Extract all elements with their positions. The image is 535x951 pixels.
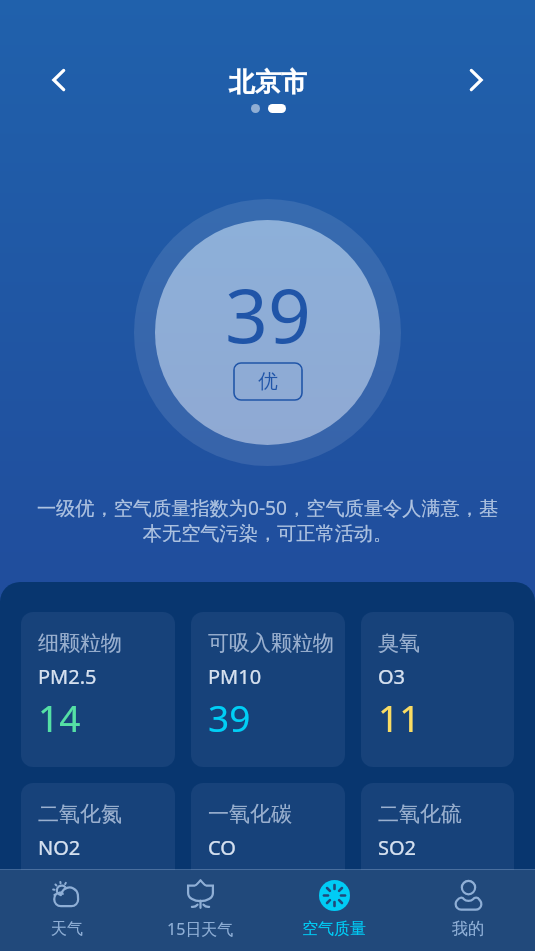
button[interactable]: 二氧化硫 [361, 783, 514, 938]
staticText: 北京市 [229, 66, 307, 99]
staticText: NO2 [38, 834, 81, 861]
staticText: 天气 [51, 919, 83, 939]
button[interactable]: Next city [452, 56, 500, 104]
staticText: 9 [38, 863, 60, 913]
staticText: 我的 [452, 919, 484, 939]
staticText: 15日天气 [167, 918, 234, 940]
staticText: 二氧化氮 [38, 801, 122, 827]
staticText: 14 [38, 692, 81, 742]
staticText: 3 [378, 863, 400, 913]
staticText: O3 [378, 663, 406, 690]
staticText: 空气质量 [302, 919, 366, 939]
button[interactable]: 可吸入颗粒物 [191, 612, 345, 767]
staticText: 一级优，空气质量指数为0-50，空气质量令人满意，基本无空气污染，可正常活动。 [33, 494, 502, 545]
staticText: 优 [258, 369, 278, 394]
staticText: CO [208, 834, 236, 861]
button[interactable]: 细颗粒物 [21, 612, 175, 767]
button[interactable]: 臭氧 [361, 612, 514, 767]
staticText: 二氧化硫 [378, 801, 462, 827]
staticText: PM10 [208, 663, 262, 690]
button[interactable]: 空气质量 [267, 875, 401, 947]
button[interactable]: 我的 [401, 875, 535, 947]
staticText: 一氧化碳 [208, 801, 292, 827]
button[interactable]: 一氧化碳 [191, 783, 345, 938]
staticText: SO2 [378, 834, 417, 861]
staticText: PM2.5 [38, 663, 97, 690]
button[interactable]: 天气 [0, 875, 133, 947]
button[interactable]: 二氧化氮 [21, 783, 175, 938]
staticText: 细颗粒物 [38, 630, 122, 656]
staticText: 39 [225, 263, 311, 365]
button[interactable]: 15日天气 [133, 874, 267, 948]
staticText: 0.4 [208, 863, 261, 913]
staticText: 39 [208, 692, 251, 742]
staticText: 11 [378, 692, 421, 742]
button[interactable]: Previous city [35, 56, 83, 104]
staticText: 可吸入颗粒物 [208, 630, 334, 656]
staticText: 臭氧 [378, 630, 420, 656]
